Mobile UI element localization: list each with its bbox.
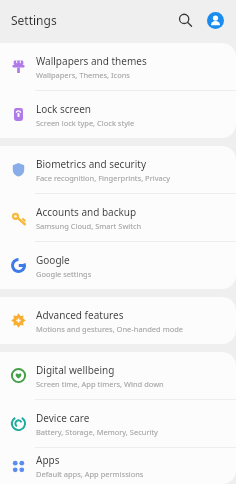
button[interactable]: Biometrics and security	[0, 146, 236, 193]
button[interactable]: Wallpapers and themes	[0, 43, 236, 90]
staticText: Default apps, App permissions	[36, 469, 144, 479]
staticText: Settings	[11, 12, 57, 28]
staticText: Face recognition, Fingerprints, Privacy	[36, 173, 171, 183]
staticText: Device care	[36, 411, 90, 425]
button[interactable]: Device care	[0, 400, 236, 447]
button[interactable]: Apps	[0, 448, 236, 484]
staticText: Wallpapers, Themes, Icons	[36, 70, 130, 80]
staticText: Apps	[36, 453, 60, 467]
staticText: Advanced features	[36, 308, 124, 322]
button[interactable]: Account	[203, 8, 227, 32]
staticText: Screen time, App timers, Wind down	[36, 379, 164, 389]
staticText: Google settings	[36, 269, 92, 279]
staticText: Screen lock type, Clock style	[36, 118, 135, 128]
staticText: Samsung Cloud, Smart Switch	[36, 221, 142, 231]
button[interactable]: Advanced features	[0, 297, 236, 344]
staticText: Lock screen	[36, 102, 92, 116]
button[interactable]: Search	[173, 8, 197, 32]
staticText: Google	[36, 253, 70, 267]
button[interactable]: Lock screen	[0, 91, 236, 138]
staticText: Motions and gestures, One-handed mode	[36, 324, 184, 334]
button[interactable]: Digital wellbeing	[0, 352, 236, 399]
staticText: Battery, Storage, Memory, Security	[36, 427, 158, 437]
staticText: Digital wellbeing	[36, 363, 115, 377]
staticText: Wallpapers and themes	[36, 54, 147, 68]
button[interactable]: Accounts and backup	[0, 194, 236, 241]
staticText: Biometrics and security	[36, 157, 146, 171]
button[interactable]: Google	[0, 242, 236, 289]
staticText: Accounts and backup	[36, 205, 137, 219]
